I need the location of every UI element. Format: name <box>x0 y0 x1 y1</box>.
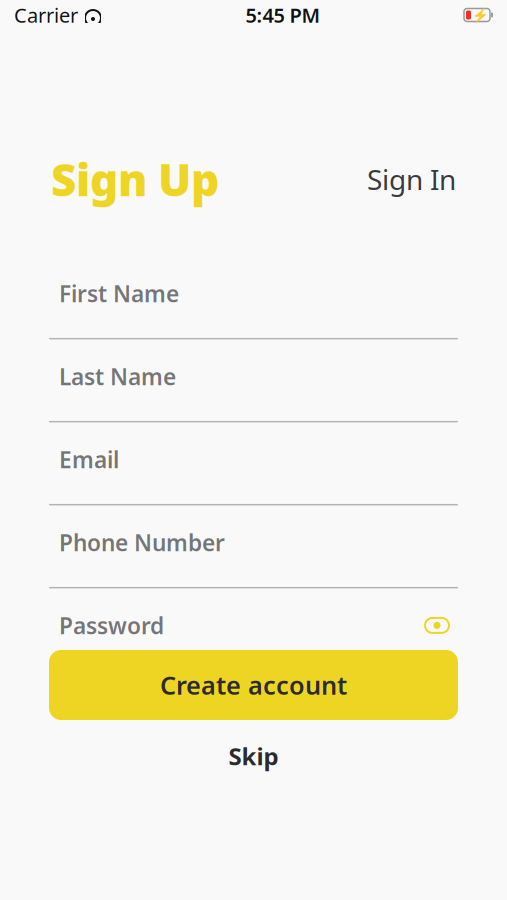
staticText: Skip <box>228 740 278 772</box>
staticText: Carrier <box>14 2 78 28</box>
staticText: 5:45 PM <box>245 2 320 28</box>
button[interactable]: Sign In <box>355 155 456 204</box>
staticText: ⚡ <box>472 7 489 23</box>
button[interactable]: Skip <box>49 734 458 778</box>
staticText: First Name <box>59 278 179 308</box>
staticText: Sign Up <box>51 150 219 208</box>
button[interactable]: Show password <box>424 616 450 634</box>
staticText: Phone Number <box>59 527 225 557</box>
staticText: Last Name <box>59 361 176 391</box>
button[interactable]: Create account <box>49 650 458 720</box>
staticText: Sign In <box>367 161 456 198</box>
staticText: Create account <box>160 668 347 702</box>
staticText: Password <box>59 610 164 640</box>
staticText: Email <box>59 444 119 474</box>
